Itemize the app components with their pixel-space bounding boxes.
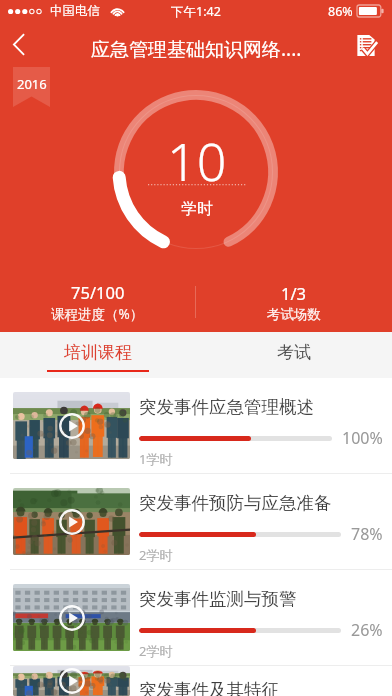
staticText: 下午1:42: [171, 3, 221, 20]
button[interactable]: 突发事件及其特征: [0, 666, 392, 696]
staticText: 课程进度（%）: [51, 305, 144, 323]
staticText: 突发事件应急管理概述: [139, 396, 314, 418]
button[interactable]: 突发事件应急管理概述: [0, 378, 392, 473]
staticText: 突发事件监测与预警: [139, 588, 297, 610]
staticText: 应急管理基础知识网络....: [91, 36, 302, 62]
button[interactable]: 1/3: [196, 282, 392, 323]
staticText: 考试: [277, 342, 311, 363]
staticText: 突发事件及其特征: [139, 679, 279, 696]
staticText: 1学时: [139, 450, 173, 468]
button[interactable]: Notes: [344, 23, 388, 67]
staticText: 78%: [351, 523, 383, 545]
staticText: 培训课程: [64, 342, 132, 363]
staticText: 2学时: [139, 642, 173, 660]
staticText: 86%: [328, 3, 353, 20]
staticText: 突发事件预防与应急准备: [139, 492, 332, 514]
button[interactable]: 培训课程: [0, 332, 196, 378]
staticText: 考试场数: [267, 306, 321, 323]
button[interactable]: 突发事件监测与预警: [0, 570, 392, 665]
button[interactable]: Back: [0, 22, 40, 66]
staticText: 100%: [342, 427, 383, 449]
staticText: 学时: [181, 199, 213, 219]
staticText: 中国电信: [50, 3, 100, 19]
staticText: 10: [167, 125, 227, 196]
staticText: 75/100: [71, 281, 125, 303]
button[interactable]: 突发事件预防与应急准备: [0, 474, 392, 569]
staticText: 2016: [17, 75, 47, 93]
staticText: 2学时: [139, 546, 173, 564]
staticText: 26%: [351, 619, 383, 641]
staticText: 1/3: [281, 282, 307, 304]
button[interactable]: 考试: [196, 332, 392, 378]
button[interactable]: 75/100: [0, 281, 195, 323]
